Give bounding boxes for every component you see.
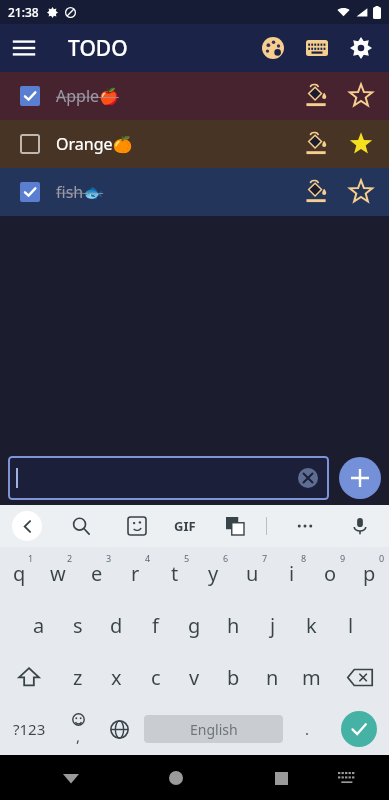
button[interactable]: z <box>58 651 97 703</box>
button[interactable]: Toggle favourite <box>339 170 383 214</box>
button[interactable]: o <box>311 547 350 599</box>
staticText: g <box>188 612 201 639</box>
staticText: 1 <box>28 552 34 564</box>
staticText: Apple🍎 <box>56 85 119 107</box>
button[interactable]: v <box>175 651 214 703</box>
button[interactable]: l <box>331 599 370 651</box>
button[interactable]: Add task <box>339 457 381 499</box>
button[interactable]: y <box>194 547 233 599</box>
button[interactable]: Done <box>341 711 377 747</box>
staticText: 0 <box>379 552 385 564</box>
staticText: . <box>305 719 310 739</box>
staticText: h <box>227 612 240 639</box>
button[interactable]: Mark done <box>14 128 46 160</box>
button[interactable]: More options <box>288 509 322 543</box>
button[interactable]: GIF <box>174 509 196 543</box>
button[interactable]: g <box>175 599 214 651</box>
button[interactable]: q <box>0 547 38 599</box>
button[interactable]: Open navigation menu <box>0 24 48 72</box>
staticText: 21:38 <box>8 4 39 20</box>
button[interactable]: Toggle favourite <box>339 122 383 166</box>
staticText: a <box>33 612 45 639</box>
staticText: c <box>151 664 161 691</box>
button[interactable]: Change colour <box>295 122 339 166</box>
staticText: English <box>190 720 238 739</box>
button[interactable]: Mark not done <box>14 176 46 208</box>
button[interactable]: Stickers <box>120 509 154 543</box>
staticText: f <box>152 612 159 639</box>
staticText: q <box>13 560 26 587</box>
button[interactable]: t <box>155 547 194 599</box>
button[interactable]: j <box>253 599 292 651</box>
staticText: w <box>50 560 66 587</box>
button[interactable]: w <box>38 547 77 599</box>
button[interactable]: Search <box>64 509 98 543</box>
button[interactable]: Settings <box>339 26 383 70</box>
button[interactable]: x <box>97 651 136 703</box>
button[interactable]: h <box>214 599 253 651</box>
button[interactable]: Change colour <box>295 170 339 214</box>
button[interactable]: Theme palette <box>251 26 295 70</box>
button[interactable]: English <box>144 715 283 743</box>
button[interactable]: Backspace <box>331 651 389 703</box>
button[interactable]: f <box>136 599 175 651</box>
staticText: v <box>189 664 200 691</box>
staticText: s <box>73 612 83 639</box>
staticText: fish🐟 <box>56 181 104 203</box>
button[interactable]: b <box>214 651 253 703</box>
staticText: 3 <box>106 552 112 564</box>
button[interactable]: Toggle favourite <box>339 74 383 118</box>
button[interactable]: Shift <box>0 651 58 703</box>
button[interactable]: Back <box>51 758 91 798</box>
button[interactable]: Change colour <box>295 74 339 118</box>
staticText: k <box>306 612 317 639</box>
button[interactable]: Mark done <box>0 120 389 168</box>
staticText: x <box>111 664 122 691</box>
staticText: o <box>324 560 337 587</box>
button[interactable]: Back <box>12 511 42 541</box>
button[interactable]: Emoji and comma <box>58 703 99 755</box>
staticText: p <box>363 560 376 587</box>
button[interactable]: Clear text <box>8 456 329 500</box>
staticText: d <box>110 612 123 639</box>
staticText: 7 <box>262 552 268 564</box>
button[interactable]: d <box>97 599 136 651</box>
staticText: n <box>266 664 279 691</box>
staticText: z <box>73 664 83 691</box>
button[interactable]: s <box>58 599 97 651</box>
button[interactable]: k <box>292 599 331 651</box>
button[interactable]: ?123 <box>0 703 58 755</box>
button[interactable]: Voice input <box>343 509 377 543</box>
staticText: , <box>76 726 81 746</box>
button[interactable]: c <box>136 651 175 703</box>
staticText: m <box>302 664 321 691</box>
staticText: 8 <box>301 552 307 564</box>
button[interactable]: i <box>272 547 311 599</box>
staticText: GIF <box>174 517 196 535</box>
button[interactable]: . <box>287 703 328 755</box>
button[interactable]: u <box>233 547 272 599</box>
button[interactable]: Change language <box>99 703 140 755</box>
staticText: t <box>171 560 179 587</box>
button[interactable]: Keyboard <box>295 26 339 70</box>
button[interactable]: n <box>253 651 292 703</box>
staticText: 9 <box>340 552 346 564</box>
staticText: ?123 <box>13 719 46 739</box>
button[interactable]: Mark not done <box>0 72 389 120</box>
button[interactable]: r <box>116 547 155 599</box>
staticText: y <box>208 560 219 587</box>
button[interactable]: Clear text <box>295 465 321 491</box>
button[interactable]: Home <box>156 758 196 798</box>
staticText: j <box>270 612 276 639</box>
button[interactable]: e <box>77 547 116 599</box>
button[interactable]: Mark not done <box>14 80 46 112</box>
button[interactable]: p <box>350 547 389 599</box>
button[interactable]: Mark not done <box>0 168 389 216</box>
button[interactable]: m <box>292 651 331 703</box>
staticText: b <box>227 664 240 691</box>
button[interactable]: Recent apps <box>261 758 301 798</box>
staticText: 4 <box>145 552 151 564</box>
button[interactable]: a <box>19 599 58 651</box>
button[interactable]: Translate <box>218 509 252 543</box>
button[interactable]: Hide keyboard <box>327 758 367 798</box>
